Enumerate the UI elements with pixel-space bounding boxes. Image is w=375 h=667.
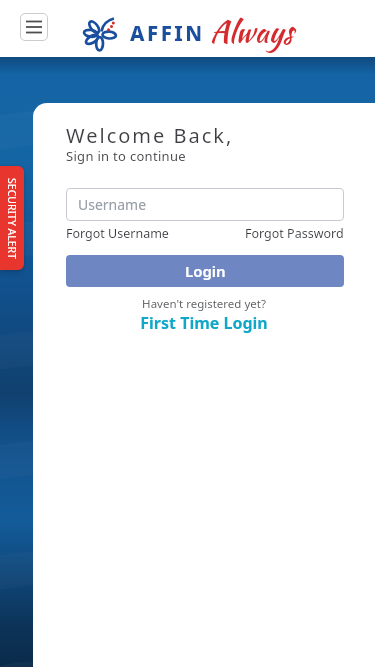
- staticText: AFFIN: [130, 19, 205, 47]
- staticText: Haven't registered yet?: [33, 296, 375, 312]
- staticText: SECURITY ALERT: [5, 178, 19, 259]
- staticText: Login: [185, 261, 226, 281]
- button[interactable]: Forgot Username: [66, 225, 169, 242]
- button[interactable]: First Time Login: [33, 312, 375, 334]
- button[interactable]: Username: [66, 188, 344, 221]
- button[interactable]: [20, 13, 48, 41]
- button[interactable]: Login: [66, 255, 344, 287]
- staticText: Always: [210, 9, 294, 53]
- staticText: Welcome Back,: [66, 122, 234, 149]
- button[interactable]: SECURITY ALERT: [0, 166, 24, 270]
- staticText: Sign in to continue: [66, 147, 186, 165]
- button[interactable]: Forgot Password: [245, 225, 344, 242]
- staticText: Username: [78, 195, 147, 214]
